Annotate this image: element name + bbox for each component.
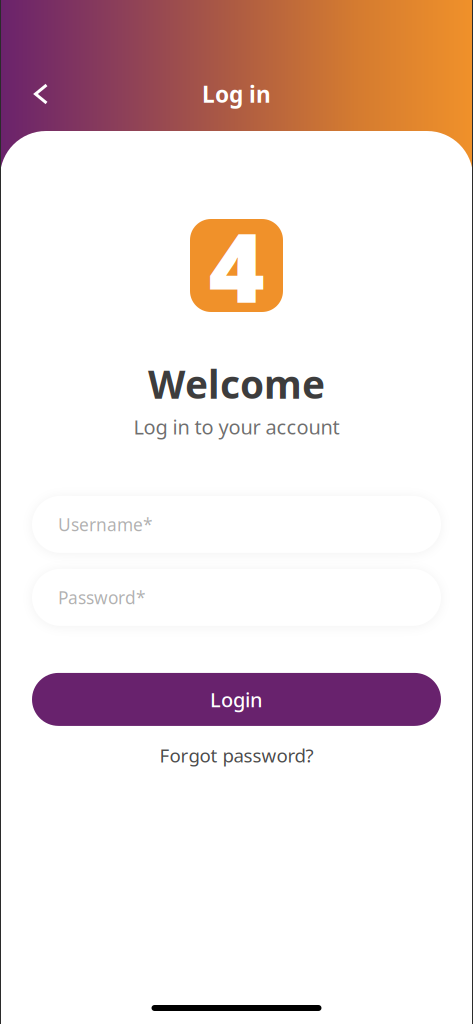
staticText: Log in <box>202 79 271 109</box>
staticText: Welcome <box>148 358 325 409</box>
staticText: 4 <box>208 202 264 329</box>
staticText: Password* <box>58 586 146 609</box>
button[interactable]: Username* <box>32 496 441 553</box>
button[interactable]: Login <box>32 673 441 726</box>
button[interactable]: Forgot password? <box>147 736 325 775</box>
button[interactable]: Password* <box>32 569 441 626</box>
staticText: Log in to your account <box>133 413 339 440</box>
button[interactable]: Back <box>19 72 63 116</box>
staticText: Username* <box>58 513 153 536</box>
staticText: Login <box>210 686 263 713</box>
staticText: Forgot password? <box>159 743 313 768</box>
